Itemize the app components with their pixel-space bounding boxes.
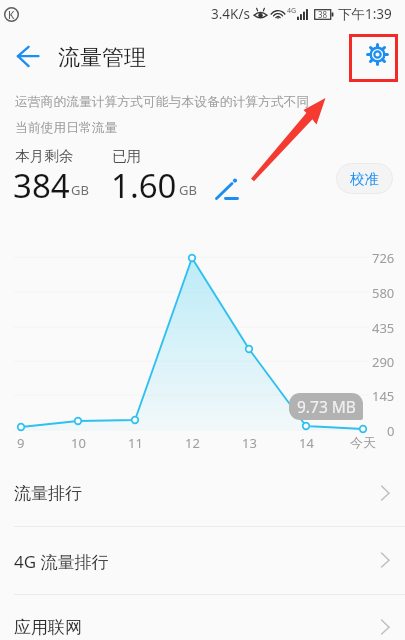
staticText: 当前使用日常流量 bbox=[15, 120, 118, 136]
staticText: GB bbox=[179, 181, 197, 199]
button[interactable]: 应用联网 bbox=[0, 595, 405, 640]
staticText: 11 bbox=[128, 434, 143, 452]
staticText: 384 bbox=[13, 163, 70, 208]
staticText: 4G 流量排行 bbox=[14, 550, 109, 573]
staticText: 9 bbox=[17, 434, 25, 452]
staticText: 流量排行 bbox=[14, 483, 82, 504]
staticText: 4G bbox=[287, 6, 297, 16]
staticText: 290 bbox=[372, 353, 395, 371]
button[interactable]: Edit bbox=[211, 173, 241, 203]
staticText: 14 bbox=[299, 434, 314, 452]
staticText: 下午1:39 bbox=[338, 5, 392, 23]
staticText: 13 bbox=[242, 434, 257, 452]
staticText: 校准 bbox=[350, 170, 379, 188]
staticText: 流量管理 bbox=[58, 44, 146, 72]
staticText: K bbox=[8, 8, 15, 22]
staticText: 145 bbox=[372, 387, 395, 405]
button[interactable]: 校准 bbox=[336, 163, 393, 194]
staticText: 今天 bbox=[350, 434, 376, 450]
staticText: 1.60 bbox=[111, 163, 177, 208]
staticText: 726 bbox=[372, 249, 395, 267]
staticText: 3.4K/s bbox=[211, 5, 250, 23]
staticText: 已用 bbox=[112, 147, 142, 165]
staticText: 本月剩余 bbox=[15, 147, 74, 165]
staticText: 435 bbox=[372, 319, 395, 337]
staticText: 9.73 MB bbox=[297, 396, 356, 417]
staticText: GB bbox=[71, 181, 89, 199]
staticText: 10 bbox=[71, 434, 86, 452]
button[interactable]: 流量排行 bbox=[0, 460, 405, 526]
staticText: 应用联网 bbox=[14, 617, 82, 638]
staticText: 12 bbox=[185, 434, 200, 452]
staticText: 运营商的流量计算方式可能与本设备的计算方式不同 bbox=[15, 94, 310, 110]
button[interactable]: Back bbox=[6, 36, 48, 78]
staticText: 580 bbox=[372, 284, 395, 302]
staticText: 38 bbox=[318, 9, 328, 20]
button[interactable]: Settings bbox=[349, 34, 398, 82]
staticText: 0 bbox=[387, 422, 395, 440]
button[interactable]: 4G 流量排行 bbox=[0, 527, 405, 593]
